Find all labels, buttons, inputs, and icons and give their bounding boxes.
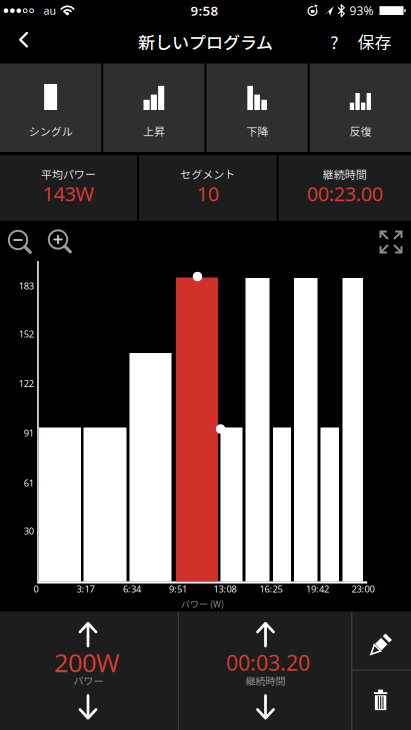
staticText: 反復 (349, 123, 371, 139)
button[interactable]: Help (317, 20, 351, 63)
staticText: 152 (19, 328, 34, 340)
button[interactable]: Increase (67, 611, 109, 653)
button[interactable]: Edit segment (354, 611, 411, 669)
staticText: シングル (29, 123, 73, 139)
staticText: パワー (W) (181, 597, 224, 610)
staticText: 143W (42, 180, 94, 207)
staticText: 平均パワー (41, 166, 96, 182)
staticText: 9:58 (190, 2, 218, 19)
button[interactable]: 下降 (206, 63, 308, 152)
staticText: 上昇 (143, 123, 165, 139)
staticText: 9:51 (169, 583, 187, 595)
staticText: 200W (54, 646, 120, 679)
staticText: au (43, 3, 56, 18)
staticText: 保存 (357, 29, 391, 54)
staticText: 16:25 (259, 583, 282, 595)
button[interactable]: 反復 (310, 63, 411, 152)
staticText: 6:34 (123, 583, 141, 595)
staticText: 継続時間 (245, 673, 285, 688)
staticText: 93% (349, 2, 373, 18)
staticText: 91 (24, 427, 34, 439)
button[interactable]: 保存 (346, 20, 402, 63)
staticText: 61 (24, 477, 34, 489)
staticText: 00:03.20 (226, 648, 310, 677)
staticText: ? (330, 28, 339, 55)
staticText: 30 (24, 525, 34, 537)
staticText: 23:00 (351, 583, 374, 595)
button[interactable]: Decrease (244, 688, 286, 730)
button[interactable]: Decrease (67, 688, 109, 730)
staticText: パワー (73, 673, 103, 688)
button[interactable]: シングル (0, 63, 101, 152)
button[interactable]: Increase (244, 611, 286, 653)
button[interactable]: Zoom out (3, 226, 36, 259)
button[interactable]: Back (0, 20, 44, 63)
staticText: 10 (197, 180, 219, 207)
button[interactable]: 上昇 (103, 63, 204, 152)
button[interactable]: Fullscreen (375, 226, 407, 258)
staticText: 新しいプログラム (138, 29, 273, 54)
staticText: 3:17 (76, 583, 94, 595)
staticText: 13:08 (213, 583, 236, 595)
staticText: 122 (19, 377, 34, 390)
staticText: 183 (19, 280, 34, 292)
staticText: 下降 (246, 123, 268, 139)
staticText: セグメント (180, 166, 235, 182)
staticText: 00:23.00 (307, 180, 383, 207)
staticText: 継続時間 (323, 166, 367, 182)
button[interactable]: Delete segment (354, 671, 411, 730)
staticText: 19:42 (306, 583, 329, 595)
button[interactable]: Zoom in (43, 226, 76, 259)
staticText: 0 (33, 583, 38, 595)
